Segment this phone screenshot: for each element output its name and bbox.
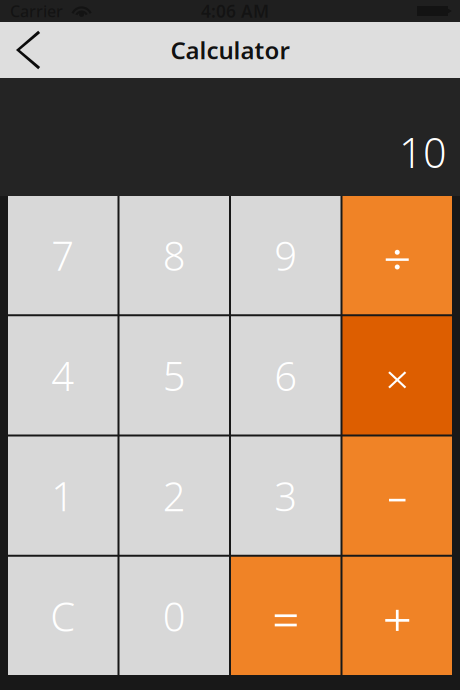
staticText: 9: [274, 229, 297, 282]
staticText: 1: [51, 469, 74, 522]
button[interactable]: 5: [119, 316, 229, 434]
staticText: C: [50, 589, 75, 642]
button[interactable]: 6: [231, 316, 340, 434]
button[interactable]: Equals: [231, 557, 340, 675]
staticText: Carrier: [10, 0, 63, 22]
button[interactable]: 9: [231, 196, 340, 314]
staticText: 2: [163, 469, 186, 522]
staticText: 6: [274, 349, 297, 402]
staticText: 5: [163, 349, 186, 402]
staticText: Calculator: [170, 34, 289, 66]
button[interactable]: 8: [119, 196, 229, 314]
button[interactable]: Multiply: [342, 316, 452, 434]
staticText: 7: [51, 229, 74, 282]
staticText: 0: [163, 589, 186, 642]
button[interactable]: 7: [8, 196, 117, 314]
staticText: 3: [274, 469, 297, 522]
button[interactable]: Divide: [342, 196, 452, 314]
staticText: 10: [399, 125, 447, 179]
button[interactable]: Back: [0, 22, 50, 78]
button[interactable]: Subtract: [342, 436, 452, 555]
staticText: 4:06 AM: [201, 0, 269, 22]
button[interactable]: Add: [342, 557, 452, 675]
button[interactable]: 3: [231, 436, 340, 555]
staticText: 4: [51, 349, 74, 402]
button[interactable]: C: [8, 557, 117, 675]
button[interactable]: 1: [8, 436, 117, 555]
button[interactable]: 2: [119, 436, 229, 555]
staticText: 8: [163, 229, 186, 282]
button[interactable]: 4: [8, 316, 117, 434]
button[interactable]: 0: [119, 557, 229, 675]
